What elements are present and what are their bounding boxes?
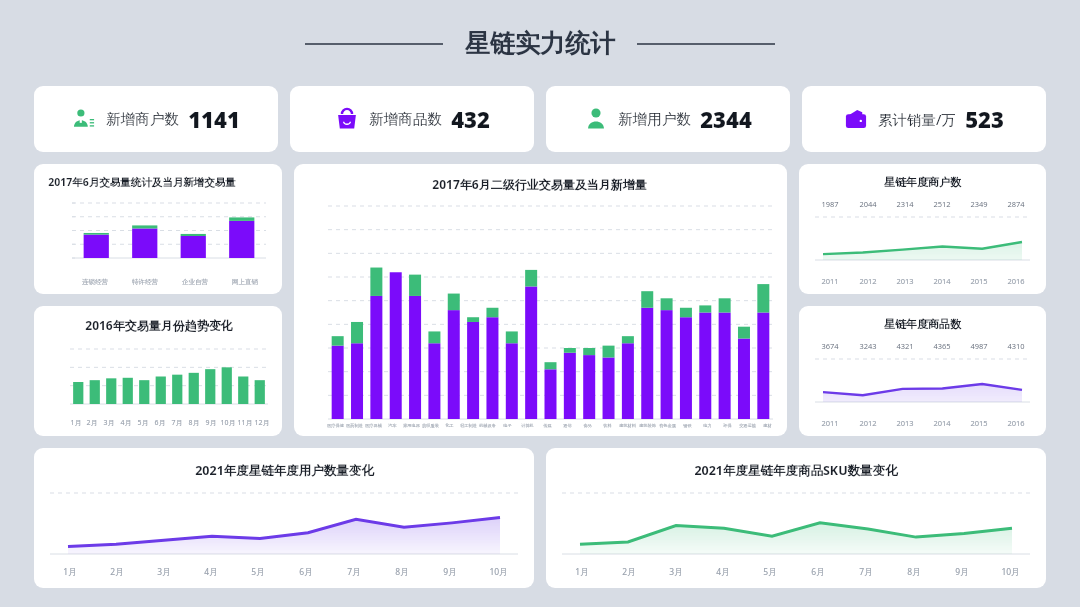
staticText: 网上直销 [232,278,258,286]
staticText: 10月 [489,566,508,578]
staticText: 2016 [1007,276,1025,286]
staticText: 星链年度商品数 [884,317,961,331]
button[interactable]: 2017年6月交易量统计及当月新增交易量 [34,164,282,294]
staticText: 建筑材料 [619,423,636,428]
button[interactable]: 星链年度商品数 [799,306,1046,436]
button[interactable]: 2017年6月二级行业交易量及当月新增量 [294,164,787,436]
staticText: 2013 [896,418,914,428]
staticText: 1141 [188,104,240,134]
staticText: 8月 [395,566,409,578]
staticText: 连锁经营 [82,278,108,286]
staticText: 电子 [503,423,512,428]
staticText: 新增用户数 [618,110,691,128]
staticText: 4月 [716,566,730,578]
staticText: 6月 [299,566,313,578]
staticText: 3月 [103,418,115,428]
staticText: 4310 [1007,341,1025,351]
staticText: 4月 [120,418,132,428]
staticText: 新增商户数 [106,110,179,128]
staticText: 2011 [821,276,839,286]
staticText: 2015 [970,418,988,428]
staticText: 4987 [970,341,988,351]
staticText: 新增商品数 [369,110,442,128]
other: 新增商户数 [72,107,96,131]
staticText: 2044 [859,199,877,209]
staticText: 6月 [811,566,825,578]
staticText: 5月 [137,418,149,428]
staticText: 家用电器 [403,423,420,428]
staticText: 9月 [443,566,457,578]
staticText: 9月 [955,566,969,578]
button[interactable]: 2021年度星链年度商品SKU数量变化 [546,448,1046,588]
staticText: 2349 [970,199,988,209]
staticText: 2016年交易量月份趋势变化 [85,317,233,333]
staticText: 2013 [896,276,914,286]
other: 新增商品数 [335,107,359,131]
staticText: 2874 [1007,199,1025,209]
staticText: 5月 [251,566,265,578]
staticText: 1月 [575,566,589,578]
staticText: 特许经营 [132,278,158,286]
staticText: 环保 [723,423,732,428]
staticText: 星链年度商户数 [884,175,961,189]
staticText: 8月 [907,566,921,578]
staticText: 3月 [157,566,171,578]
staticText: 钢铁 [683,423,692,428]
staticText: 9月 [205,418,217,428]
button[interactable]: 星链年度商户数 [799,164,1046,294]
staticText: 医疗器械 [365,423,382,428]
staticText: 计算机 [521,423,534,428]
staticText: 轻工制造 [460,423,477,428]
staticText: 电力 [703,423,712,428]
staticText: 7月 [347,566,361,578]
staticText: 通信 [563,423,572,428]
staticText: 1987 [821,199,839,209]
staticText: 2014 [933,418,951,428]
staticText: 3月 [669,566,683,578]
staticText: 2014 [933,276,951,286]
staticText: 7月 [859,566,873,578]
staticText: 8月 [188,418,200,428]
staticText: 累计销量/万 [878,109,956,129]
staticText: 11月 [237,418,253,428]
staticText: 饮料 [603,423,612,428]
staticText: 2月 [110,566,124,578]
staticText: 1月 [70,418,82,428]
staticText: 523 [965,104,1004,134]
staticText: 7月 [171,418,183,428]
staticText: 2017年6月二级行业交易量及当月新增量 [432,176,647,192]
staticText: 2512 [933,199,951,209]
staticText: 汽车 [388,423,397,428]
staticText: 2016 [1007,418,1025,428]
staticText: 机械设备 [479,423,496,428]
staticText: 2021年度星链年度用户数量变化 [195,462,374,479]
staticText: 2月 [86,418,98,428]
button[interactable]: 2021年度星链年度用户数量变化 [34,448,534,588]
button[interactable]: 新增用户数 [546,86,790,152]
staticText: 2015 [970,276,988,286]
button[interactable]: 累计销量/万 [802,86,1046,152]
staticText: 交通运输 [739,423,756,428]
staticText: 4321 [896,341,914,351]
staticText: 2314 [896,199,914,209]
staticText: 医药制造 [346,423,363,428]
staticText: 2012 [859,276,877,286]
staticText: 2344 [700,104,752,134]
staticText: 5月 [763,566,777,578]
staticText: 3243 [859,341,877,351]
staticText: 10月 [220,418,236,428]
staticText: 2月 [622,566,636,578]
staticText: 1月 [63,566,77,578]
staticText: 建材 [763,423,772,428]
staticText: 2011 [821,418,839,428]
staticText: 建筑装饰 [639,423,656,428]
staticText: 企业自营 [182,278,208,286]
staticText: 食品 [583,423,592,428]
other: 新增用户数 [584,107,608,131]
staticText: 6月 [154,418,166,428]
button[interactable]: 2016年交易量月份趋势变化 [34,306,282,436]
button[interactable]: 新增商户数 [34,86,278,152]
staticText: 2017年6月交易量统计及当月新增交易量 [48,175,236,189]
button[interactable]: 新增商品数 [290,86,534,152]
staticText: 12月 [254,418,270,428]
